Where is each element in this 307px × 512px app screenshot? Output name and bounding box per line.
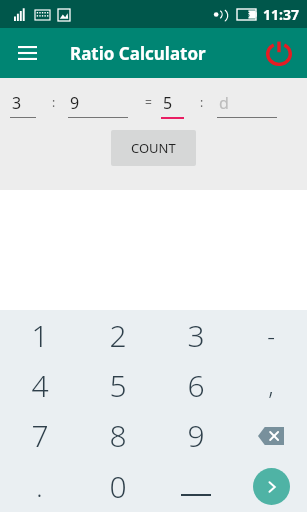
button[interactable]: 5 xyxy=(161,92,184,119)
staticText: : xyxy=(200,94,204,110)
button[interactable]: . xyxy=(0,461,79,512)
staticText: 5 xyxy=(109,365,127,406)
staticText: , xyxy=(268,369,274,402)
button[interactable]: Space xyxy=(157,461,235,512)
button[interactable]: 9 xyxy=(68,92,128,118)
button[interactable]: Backspace xyxy=(235,410,307,461)
button[interactable]: Enter xyxy=(235,461,307,512)
button[interactable]: 5 xyxy=(79,360,157,410)
staticText: 9 xyxy=(187,415,205,456)
button[interactable]: - xyxy=(235,310,307,360)
button[interactable]: 9 xyxy=(157,410,235,461)
button[interactable]: 8 xyxy=(79,410,157,461)
staticText: 3 xyxy=(12,92,22,114)
staticText: 11:37 xyxy=(263,5,299,24)
staticText: : xyxy=(52,94,56,110)
button[interactable]: d xyxy=(217,92,277,118)
button[interactable]: , xyxy=(235,360,307,410)
staticText: 4 xyxy=(31,365,49,406)
staticText: . xyxy=(36,469,43,504)
staticText: 3 xyxy=(187,315,205,356)
staticText: 5 xyxy=(163,92,173,114)
staticText: = xyxy=(145,94,152,110)
staticText: 1 xyxy=(31,315,49,356)
button[interactable]: 4 xyxy=(0,360,79,410)
button[interactable]: 1 xyxy=(0,310,79,360)
button[interactable]: COUNT xyxy=(111,130,196,166)
staticText: 8 xyxy=(109,415,127,456)
button[interactable]: 3 xyxy=(157,310,235,360)
button[interactable]: 2 xyxy=(79,310,157,360)
button[interactable]: Open navigation menu xyxy=(8,34,46,72)
button[interactable]: 6 xyxy=(157,360,235,410)
staticText: 0 xyxy=(109,466,127,507)
button[interactable]: 7 xyxy=(0,410,79,461)
staticText: 9 xyxy=(70,92,80,114)
staticText: 2 xyxy=(109,315,127,356)
staticText: d xyxy=(219,92,229,114)
staticText: 7 xyxy=(31,415,49,456)
staticText: COUNT xyxy=(131,139,176,157)
button[interactable]: 3 xyxy=(10,92,36,118)
staticText: 85 xyxy=(242,10,251,20)
button[interactable]: Power / exit xyxy=(259,33,299,73)
staticText: Ratio Calculator xyxy=(70,42,206,65)
button[interactable]: 0 xyxy=(79,461,157,512)
staticText: 6 xyxy=(187,365,205,406)
staticText: - xyxy=(267,319,275,352)
